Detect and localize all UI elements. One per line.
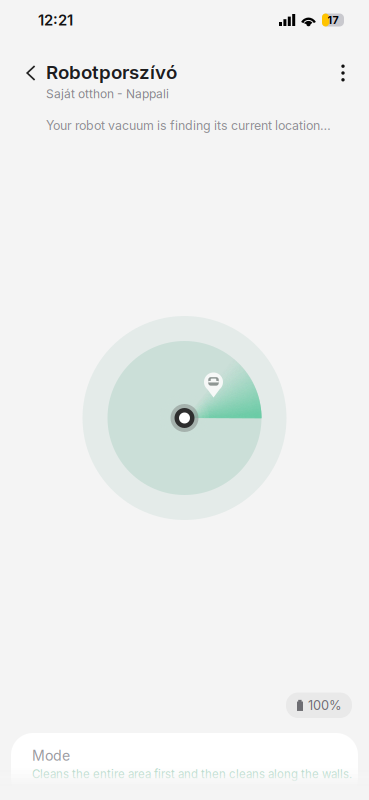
staticText: Saját otthon - Nappali <box>46 87 169 101</box>
button[interactable]: Back <box>16 57 46 89</box>
staticText: 12:21 <box>38 11 73 29</box>
button[interactable]: More options <box>329 57 357 89</box>
staticText: Robotporszívó <box>46 61 177 84</box>
staticText: Mode <box>32 747 70 764</box>
staticText: Cleans the entire area first and then cl… <box>32 767 352 781</box>
staticText: 100% <box>308 697 342 713</box>
staticText: 17 <box>327 13 338 26</box>
staticText: Your robot vacuum is finding its current… <box>46 118 331 133</box>
